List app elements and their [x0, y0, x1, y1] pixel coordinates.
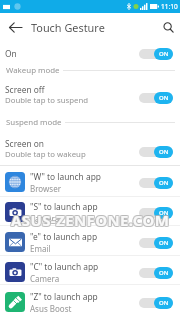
button[interactable]: "S" to launch app: [0, 197, 180, 227]
staticText: Suspend mode: [6, 117, 62, 128]
staticText: 11:10: [161, 2, 178, 11]
staticText: Email: [30, 243, 51, 254]
button[interactable]: "e" to launch app: [0, 227, 180, 257]
staticText: "C" to launch app: [30, 261, 99, 272]
staticText: Double tap to suspend: [5, 95, 89, 106]
staticText: "Z" to launch app: [30, 291, 98, 302]
staticText: ASUS-ZENFONE.COM: [10, 209, 169, 229]
button[interactable]: "W" to launch app: [0, 167, 180, 197]
staticText: Camera: [30, 213, 60, 224]
button[interactable]: Screen off: [0, 82, 180, 108]
button[interactable]: "Z" to launch app: [0, 287, 180, 317]
button[interactable]: On: [0, 43, 180, 65]
staticText: Double tap to wakeup: [5, 149, 86, 160]
staticText: ASUS-ZENFONE.COM: [11, 210, 170, 230]
staticText: ON: [159, 94, 169, 102]
staticText: ASUS-ZENFONE.COM: [12, 209, 171, 229]
staticText: ON: [159, 269, 169, 277]
staticText: On: [5, 48, 17, 59]
staticText: Screen off: [5, 84, 45, 95]
staticText: ASUS-ZENFONE.COM: [11, 210, 170, 230]
staticText: ASUS-ZENFONE.COM: [10, 210, 169, 230]
staticText: Touch Gesture: [31, 20, 105, 35]
staticText: Browser: [30, 183, 61, 194]
staticText: "e" to launch app: [30, 231, 98, 242]
button[interactable]: Toggle: [139, 236, 173, 249]
staticText: Wakeup mode: [6, 65, 60, 76]
staticText: ASUS-ZENFONE.COM: [12, 210, 171, 230]
button[interactable]: Toggle: [139, 266, 173, 279]
button[interactable]: "C" to launch app: [0, 257, 180, 287]
button[interactable]: Toggle: [139, 206, 173, 219]
staticText: ASUS-ZENFONE.COM: [11, 209, 170, 229]
staticText: ON: [159, 299, 169, 307]
staticText: "W" to launch app: [30, 171, 101, 182]
button[interactable]: Back: [0, 13, 31, 42]
staticText: ON: [159, 50, 169, 58]
staticText: Asus Boost: [30, 303, 72, 314]
staticText: "S" to launch app: [30, 201, 98, 212]
staticText: ASUS-ZENFONE.COM: [12, 211, 171, 231]
button[interactable]: Toggle: [139, 91, 173, 104]
staticText: ON: [159, 239, 169, 247]
staticText: ON: [159, 179, 169, 187]
staticText: ASUS-ZENFONE.COM: [11, 211, 170, 231]
staticText: ON: [159, 209, 169, 217]
button[interactable]: Toggle: [139, 145, 173, 158]
button[interactable]: Toggle: [139, 296, 173, 309]
button[interactable]: Toggle: [139, 47, 173, 60]
staticText: ASUS-ZENFONE.COM: [10, 211, 169, 231]
button[interactable]: Search: [156, 13, 180, 42]
staticText: Camera: [30, 273, 60, 284]
staticText: ON: [159, 148, 169, 156]
staticText: Screen on: [5, 138, 45, 149]
button[interactable]: Toggle: [139, 176, 173, 189]
button[interactable]: Screen on: [0, 136, 180, 162]
